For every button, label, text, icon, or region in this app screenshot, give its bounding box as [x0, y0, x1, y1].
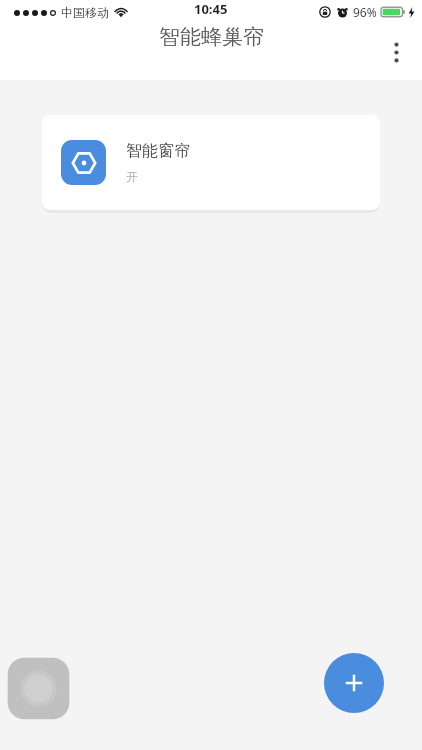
button[interactable]: Add device [324, 653, 384, 713]
staticText: 中国移动 [61, 5, 109, 20]
button[interactable]: More options [370, 26, 422, 78]
staticText: 开 [126, 169, 138, 184]
staticText: 10:45 [194, 0, 228, 18]
staticText: 智能蜂巢帘 [159, 24, 264, 50]
button[interactable]: AssistiveTouch [5, 655, 72, 722]
staticText: 96% [353, 4, 377, 20]
button[interactable]: 智能窗帘 [42, 115, 380, 210]
staticText: 智能窗帘 [126, 141, 190, 161]
